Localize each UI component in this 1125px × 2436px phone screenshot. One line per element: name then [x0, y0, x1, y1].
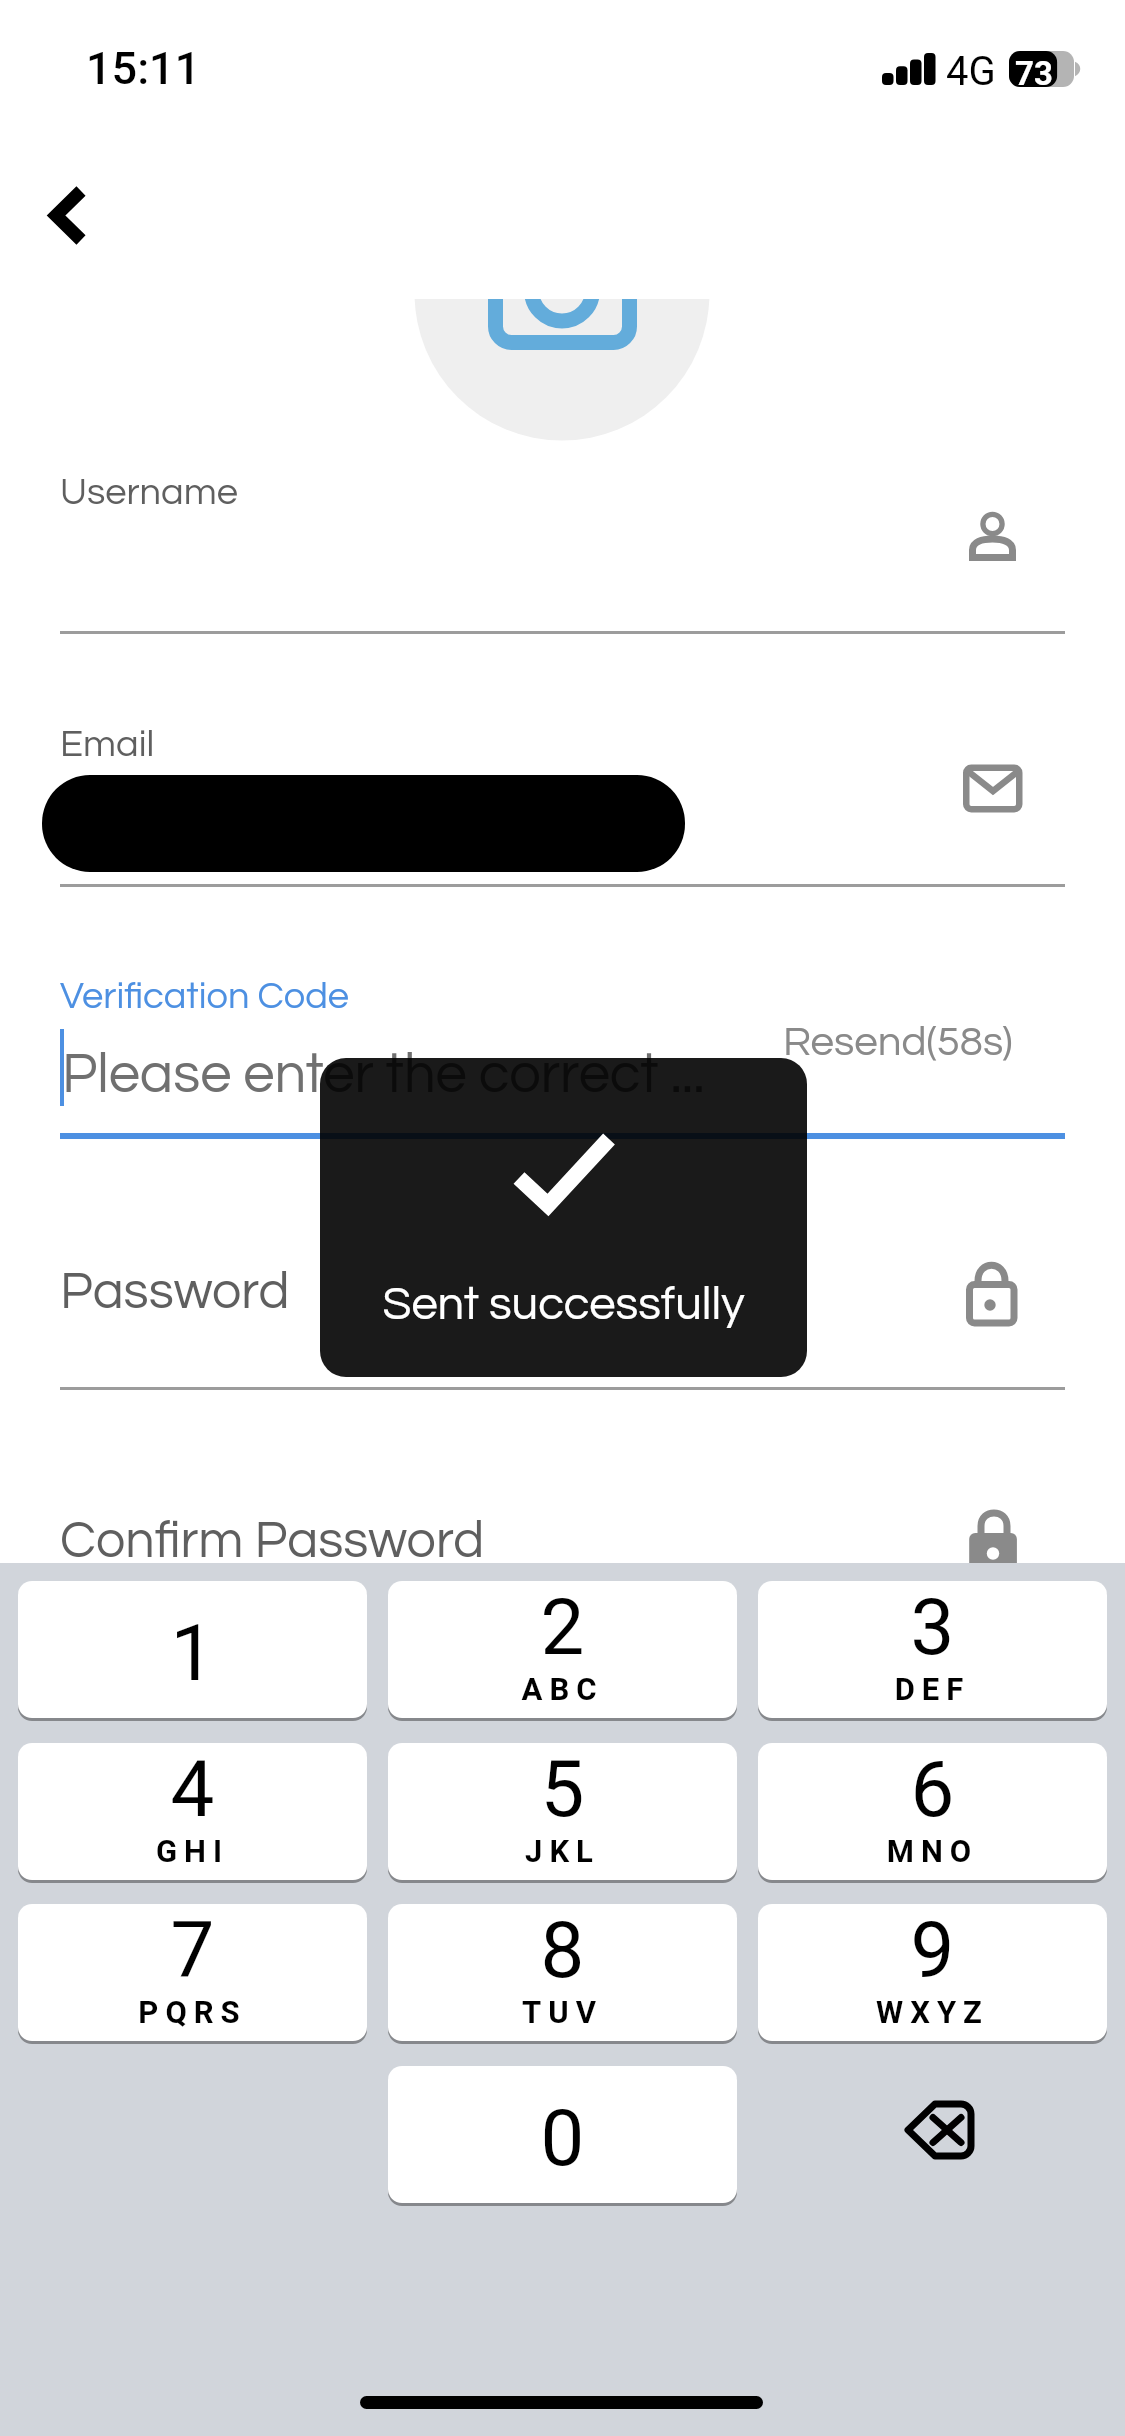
staticText: Email	[60, 725, 155, 764]
staticText: ABC	[388, 1671, 737, 1707]
staticText: DEF	[758, 1671, 1107, 1707]
staticText: GHI	[18, 1833, 367, 1869]
staticText: JKL	[388, 1833, 737, 1869]
staticText: 0	[388, 2093, 737, 2184]
staticText: 9	[758, 1905, 1107, 1996]
button[interactable]: 8	[388, 1904, 737, 2041]
button[interactable]: 4	[18, 1743, 367, 1880]
staticText: Sent successfully	[320, 1280, 807, 1328]
button[interactable]: 7	[18, 1904, 367, 2041]
staticText: 15:11	[86, 42, 201, 95]
staticText: 3	[758, 1582, 1107, 1673]
button[interactable]: Back	[20, 165, 120, 265]
button[interactable]: 0	[388, 2066, 737, 2203]
button[interactable]: 3	[758, 1581, 1107, 1718]
staticText: WXYZ	[758, 1994, 1107, 2030]
staticText: 2	[388, 1582, 737, 1673]
button[interactable]: Resend(58s)	[783, 1021, 1013, 1064]
button[interactable]: 2	[388, 1581, 737, 1718]
staticText: TUV	[388, 1994, 737, 2030]
staticText: Verification Code	[60, 977, 349, 1016]
staticText: 6	[758, 1744, 1107, 1835]
button[interactable]: Backspace	[758, 2066, 1107, 2203]
staticText: Please enter the correct ...	[62, 1046, 822, 1104]
staticText: MNO	[758, 1833, 1107, 1869]
staticText: 4G	[946, 48, 996, 95]
button[interactable]: 9	[758, 1904, 1107, 2041]
button[interactable]: 6	[758, 1743, 1107, 1880]
button[interactable]: 5	[388, 1743, 737, 1880]
staticText: Password	[60, 1265, 290, 1319]
staticText: 8	[388, 1905, 737, 1996]
staticText: 1	[18, 1608, 367, 1699]
staticText: Username	[60, 473, 238, 512]
staticText: 5	[388, 1744, 737, 1835]
staticText: 4	[18, 1744, 367, 1835]
staticText: PQRS	[18, 1994, 367, 2030]
staticText: 7	[18, 1905, 367, 1996]
button[interactable]: 1	[18, 1581, 367, 1718]
staticText: 73	[1009, 54, 1059, 93]
staticText: Confirm Password	[60, 1514, 485, 1568]
